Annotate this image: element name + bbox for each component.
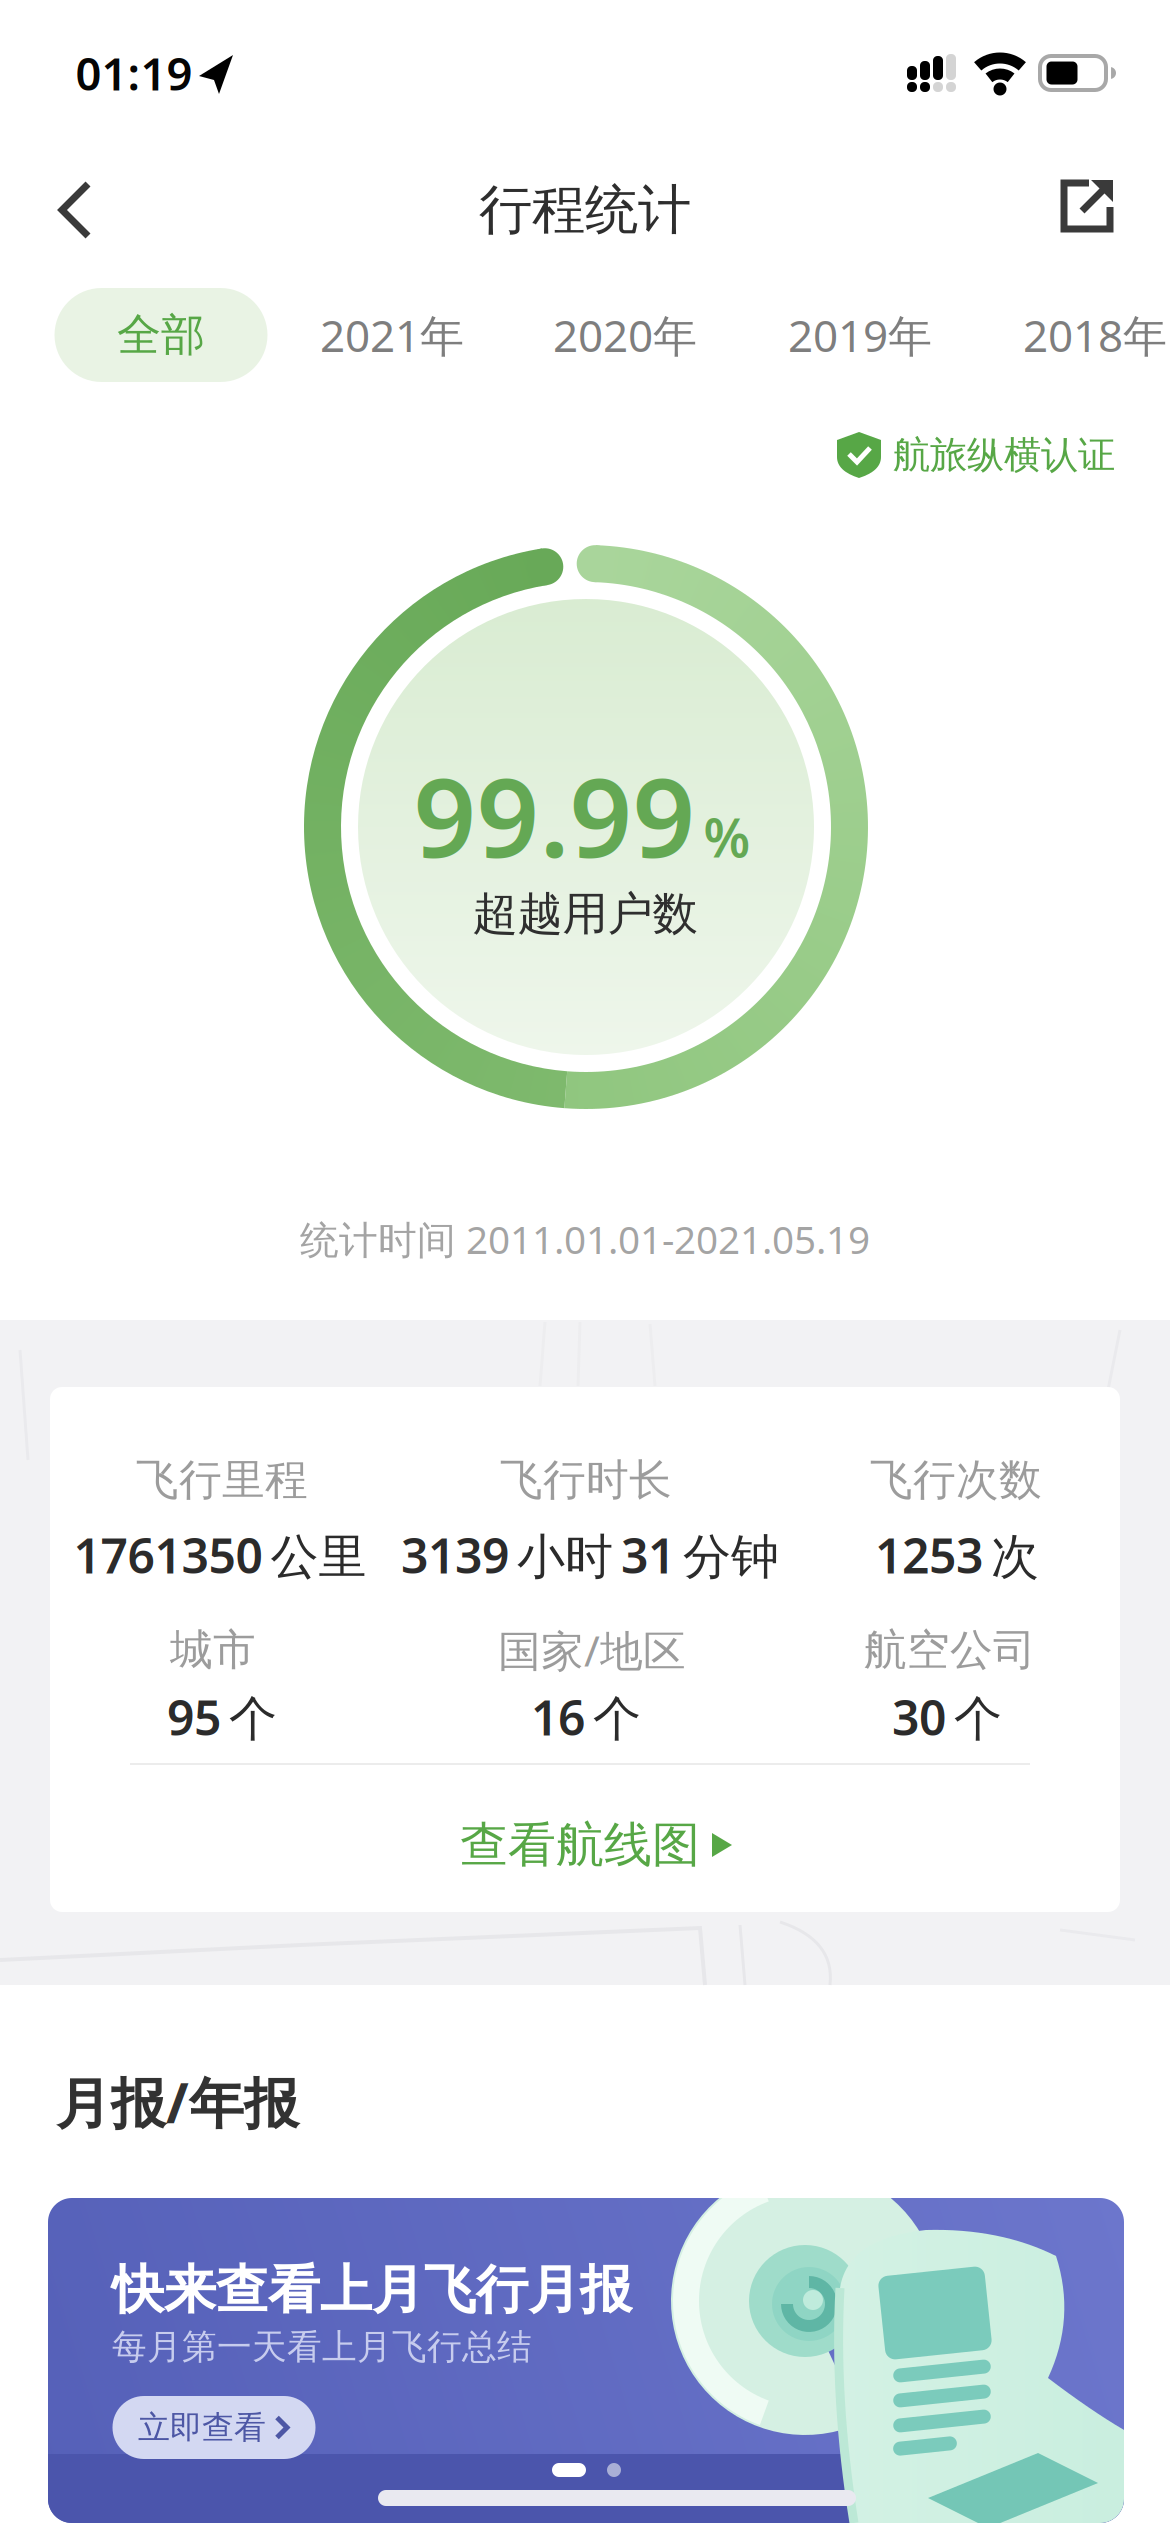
button[interactable]: 查看航线图 [460,1815,734,1874]
staticText: 统计时间 2011.01.01-2021.05.19 [300,1213,870,1265]
staticText: % [703,801,750,872]
staticText: 航旅纵横认证 [893,432,1115,478]
staticText: 2019年 [788,306,932,364]
button[interactable]: Share [1042,161,1132,251]
staticText: 航空公司 [864,1624,1036,1676]
staticText: 飞行次数 [870,1454,1042,1506]
button[interactable]: 全部 [54,288,267,382]
staticText: 每月第一天看上月飞行总结 [112,2326,532,2368]
button[interactable]: 2018年 [1023,306,1167,364]
staticText: 行程统计 [479,177,691,243]
staticText: 城市 [170,1624,256,1676]
button[interactable]: Back [30,165,120,255]
staticText: 国家/地区 [498,1622,686,1678]
staticText: 快来查看上月飞行月报 [112,2258,632,2322]
staticText: 1253 次 [875,1523,1039,1587]
staticText: 2018年 [1023,306,1167,364]
button[interactable]: 2019年 [788,306,932,364]
button[interactable]: 2021年 [320,306,464,364]
staticText: 01:19 [75,43,192,103]
staticText: 飞行时长 [500,1454,672,1506]
staticText: 3139 小时 31 分钟 [401,1523,779,1587]
staticText: 立即查看 [138,2408,266,2447]
staticText: 30 个 [892,1685,1002,1749]
staticText: 全部 [117,308,205,362]
staticText: 查看航线图 [460,1815,700,1874]
staticText: 飞行里程 [136,1454,308,1506]
staticText: 2021年 [320,306,464,364]
button[interactable]: 快来查看上月飞行月报 [48,2198,1124,2523]
staticText: 月报/年报 [56,2066,299,2138]
staticText: 超越用户数 [472,886,697,942]
staticText: 16 个 [531,1685,641,1749]
staticText: 99.99 [413,742,695,888]
staticText: 95 个 [167,1685,277,1749]
staticText: 2020年 [553,306,697,364]
staticText: 1761350 公里 [73,1523,366,1587]
button[interactable]: 2020年 [553,306,697,364]
button[interactable]: 立即查看 [112,2396,315,2459]
